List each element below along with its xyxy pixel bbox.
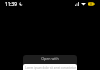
staticText: Open with <box>41 56 59 61</box>
staticText: 11:39 <box>5 1 17 7</box>
other: Battery <box>88 2 95 6</box>
button[interactable]: Open with <box>23 55 77 70</box>
staticText: Lorem ipsum dolor sit amet consectetur <box>25 66 76 70</box>
